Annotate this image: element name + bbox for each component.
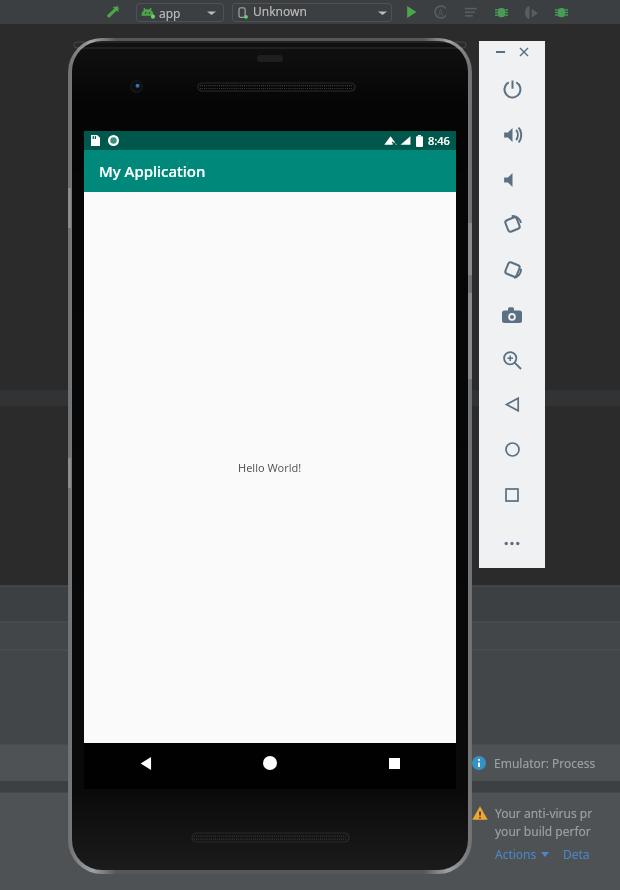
button[interactable]: Home xyxy=(489,427,535,472)
button[interactable]: app xyxy=(136,3,224,22)
button[interactable]: Minimize xyxy=(491,43,509,61)
button[interactable]: Take screenshot xyxy=(489,292,535,337)
button[interactable]: Power xyxy=(489,67,535,112)
button[interactable]: Zoom xyxy=(489,337,535,382)
button[interactable]: Overview xyxy=(489,472,535,517)
button[interactable]: Close xyxy=(515,43,533,61)
staticText: Actions xyxy=(495,846,537,862)
button[interactable]: Home xyxy=(208,751,332,775)
button[interactable]: Back xyxy=(489,382,535,427)
button[interactable]: Recent apps xyxy=(332,751,456,775)
button[interactable]: Debug xyxy=(552,3,570,21)
button[interactable]: Volume up xyxy=(489,112,535,157)
button[interactable]: Actions xyxy=(495,846,549,862)
staticText: Your anti-virus pr xyxy=(495,805,593,821)
button[interactable]: Attach debugger xyxy=(522,3,540,21)
button[interactable]: Rotate left xyxy=(489,202,535,247)
staticText: My Application xyxy=(99,161,206,181)
button[interactable]: Unknown Device xyxy=(232,3,392,22)
staticText: your build perfor xyxy=(495,823,591,839)
staticText: 8:46 xyxy=(428,133,450,148)
staticText: Unknown Device xyxy=(253,3,315,22)
button[interactable]: Debug xyxy=(492,3,510,21)
staticText: Deta xyxy=(563,846,590,862)
button[interactable]: My Application xyxy=(84,150,456,192)
button[interactable]: Rotate right xyxy=(489,247,535,292)
button[interactable]: Deta xyxy=(563,846,590,862)
staticText: Hello World! xyxy=(238,460,302,475)
button[interactable]: Run xyxy=(402,3,420,21)
button[interactable]: Run configurations xyxy=(462,3,480,21)
staticText: Emulator: Process xyxy=(494,755,596,771)
button[interactable]: More xyxy=(489,521,535,566)
button[interactable]: Volume down xyxy=(489,157,535,202)
button[interactable]: Sync project xyxy=(100,1,126,23)
button[interactable]: Back xyxy=(84,751,208,775)
button[interactable]: Code analysis xyxy=(432,3,450,21)
staticText: app xyxy=(159,5,181,21)
staticText: A xyxy=(438,7,444,18)
